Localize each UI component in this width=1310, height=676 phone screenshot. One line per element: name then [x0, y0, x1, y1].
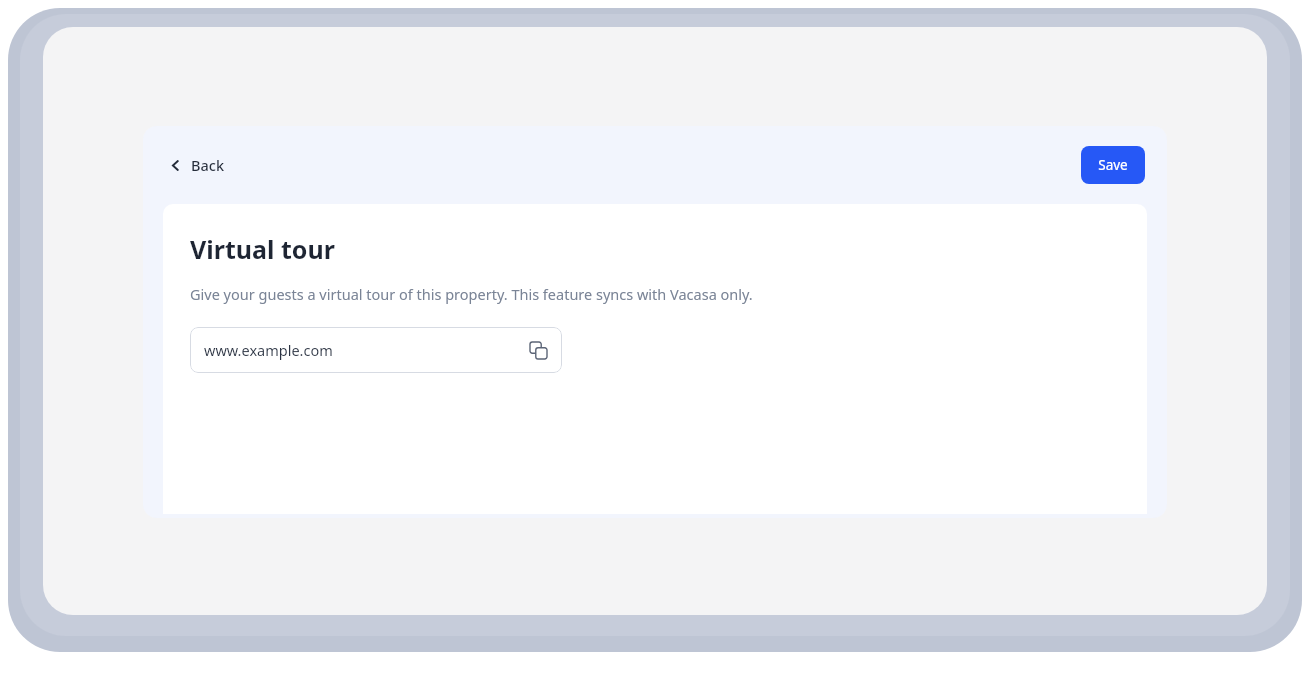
button[interactable]: Copy link: [526, 338, 550, 362]
staticText: Save: [1098, 156, 1128, 174]
button[interactable]: www.example.com: [190, 327, 562, 373]
button[interactable]: Back: [161, 149, 233, 181]
staticText: Back: [191, 155, 225, 175]
staticText: Give your guests a virtual tour of this …: [190, 284, 753, 304]
button[interactable]: Save: [1081, 146, 1145, 184]
staticText: Virtual tour: [190, 232, 335, 266]
staticText: www.example.com: [204, 340, 526, 360]
